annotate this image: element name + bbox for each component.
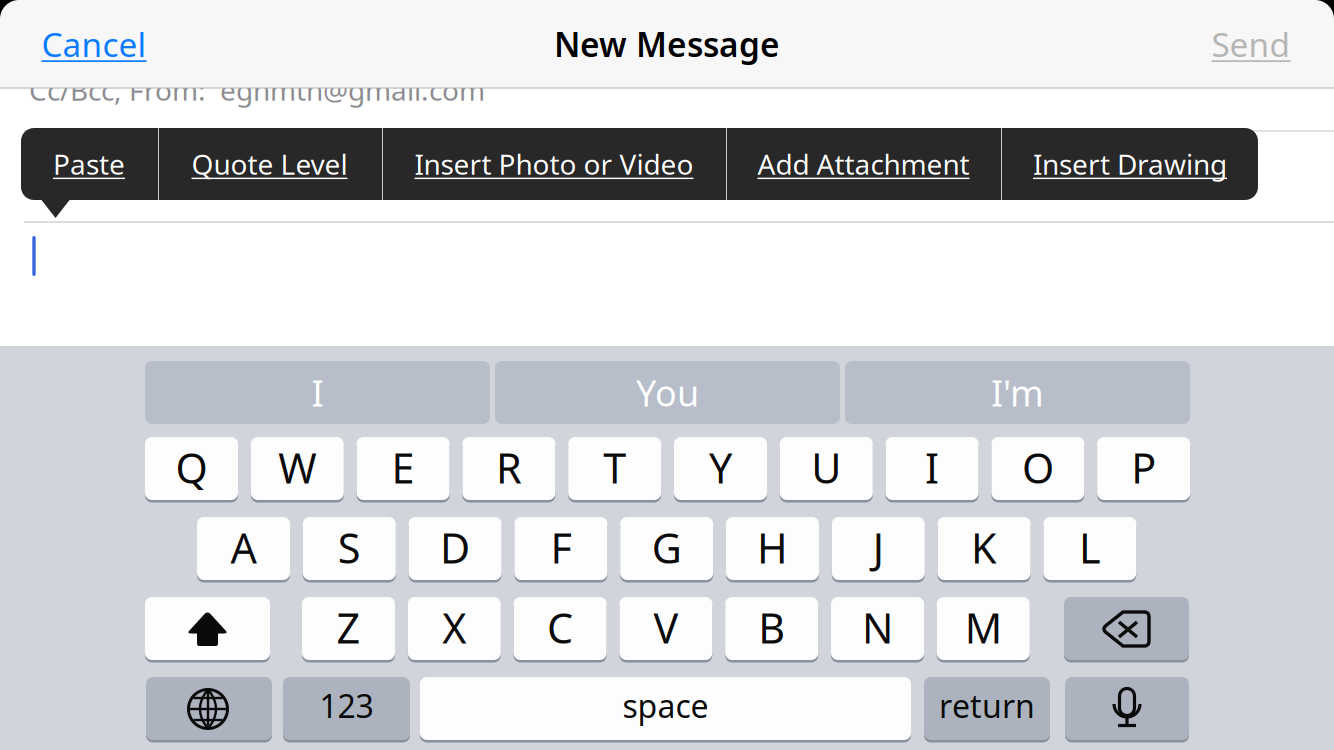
button[interactable]: Delete xyxy=(1064,595,1189,662)
staticText: Insert Photo or Video xyxy=(414,145,693,183)
button[interactable]: V xyxy=(619,595,712,662)
staticText: C xyxy=(547,600,573,655)
button[interactable]: You xyxy=(495,361,840,424)
staticText: I xyxy=(311,369,323,416)
button[interactable]: return xyxy=(924,675,1050,742)
button[interactable]: Q xyxy=(145,435,238,502)
staticText: Y xyxy=(709,440,732,495)
staticText: I xyxy=(925,440,939,495)
button[interactable]: I'm xyxy=(845,361,1190,424)
button[interactable]: K xyxy=(938,515,1031,582)
staticText: B xyxy=(758,600,785,655)
button[interactable]: J xyxy=(832,515,925,582)
button[interactable]: Send xyxy=(1176,8,1326,80)
button[interactable]: X xyxy=(408,595,501,662)
button[interactable]: Z xyxy=(302,595,395,662)
staticText: Q xyxy=(175,440,207,495)
staticText: W xyxy=(278,440,316,495)
staticText: Send xyxy=(1211,22,1290,66)
button[interactable]: Quote Level xyxy=(158,128,381,200)
button[interactable]: I xyxy=(145,361,490,424)
button[interactable]: Cancel xyxy=(9,8,179,80)
button[interactable]: A xyxy=(197,515,290,582)
staticText: X xyxy=(442,600,466,655)
staticText: N xyxy=(862,600,893,655)
staticText: M xyxy=(965,600,1002,655)
button[interactable]: O xyxy=(991,435,1084,502)
button[interactable]: Shift xyxy=(145,595,270,662)
staticText: Paste xyxy=(53,145,125,183)
button[interactable]: C xyxy=(514,595,607,662)
button[interactable]: G xyxy=(620,515,713,582)
button[interactable]: Add Attachment xyxy=(727,128,1000,200)
button[interactable]: 123 xyxy=(283,675,410,742)
button[interactable]: I xyxy=(886,435,979,502)
button[interactable]: Insert Drawing xyxy=(1002,128,1258,200)
staticText: New Message xyxy=(554,22,780,66)
button[interactable]: H xyxy=(726,515,819,582)
staticText: U xyxy=(811,440,841,495)
staticText: return xyxy=(939,684,1035,727)
staticText: K xyxy=(971,520,997,575)
staticText: D xyxy=(440,520,470,575)
button[interactable]: space xyxy=(420,675,911,742)
staticText: Add Attachment xyxy=(757,145,969,183)
button[interactable]: N xyxy=(831,595,924,662)
button[interactable]: W xyxy=(251,435,344,502)
button[interactable]: Next keyboard xyxy=(146,675,272,742)
button[interactable]: Y xyxy=(674,435,767,502)
staticText: You xyxy=(636,369,699,416)
staticText: L xyxy=(1079,520,1101,575)
button[interactable]: Paste xyxy=(21,128,157,200)
staticText: O xyxy=(1022,440,1054,495)
staticText: Quote Level xyxy=(191,145,347,183)
button[interactable]: Dictate xyxy=(1065,675,1189,742)
button[interactable]: L xyxy=(1043,515,1136,582)
staticText: S xyxy=(338,520,361,575)
button[interactable]: R xyxy=(462,435,555,502)
button[interactable]: D xyxy=(409,515,502,582)
button[interactable]: T xyxy=(568,435,661,502)
staticText: R xyxy=(496,440,522,495)
staticText: 123 xyxy=(319,684,373,727)
staticText: space xyxy=(622,684,708,727)
button[interactable]: E xyxy=(357,435,450,502)
staticText: Cancel xyxy=(41,22,146,66)
button[interactable]: S xyxy=(303,515,396,582)
staticText: T xyxy=(603,440,626,495)
staticText: Insert Drawing xyxy=(1033,145,1227,183)
button[interactable]: M xyxy=(937,595,1030,662)
button[interactable]: Insert Photo or Video xyxy=(383,128,725,200)
staticText: G xyxy=(652,520,682,575)
staticText: V xyxy=(653,600,678,655)
button[interactable]: P xyxy=(1097,435,1190,502)
staticText: F xyxy=(550,520,571,575)
staticText: E xyxy=(392,440,415,495)
button[interactable]: F xyxy=(514,515,607,582)
button[interactable]: U xyxy=(780,435,873,502)
staticText: P xyxy=(1131,440,1156,495)
staticText: H xyxy=(757,520,788,575)
staticText: J xyxy=(873,520,884,575)
button[interactable]: B xyxy=(725,595,818,662)
staticText: I'm xyxy=(991,369,1044,416)
staticText: Cc/Bcc, From: eghmth@gmail.com xyxy=(29,71,485,109)
staticText: A xyxy=(230,520,256,575)
staticText: Z xyxy=(336,600,360,655)
